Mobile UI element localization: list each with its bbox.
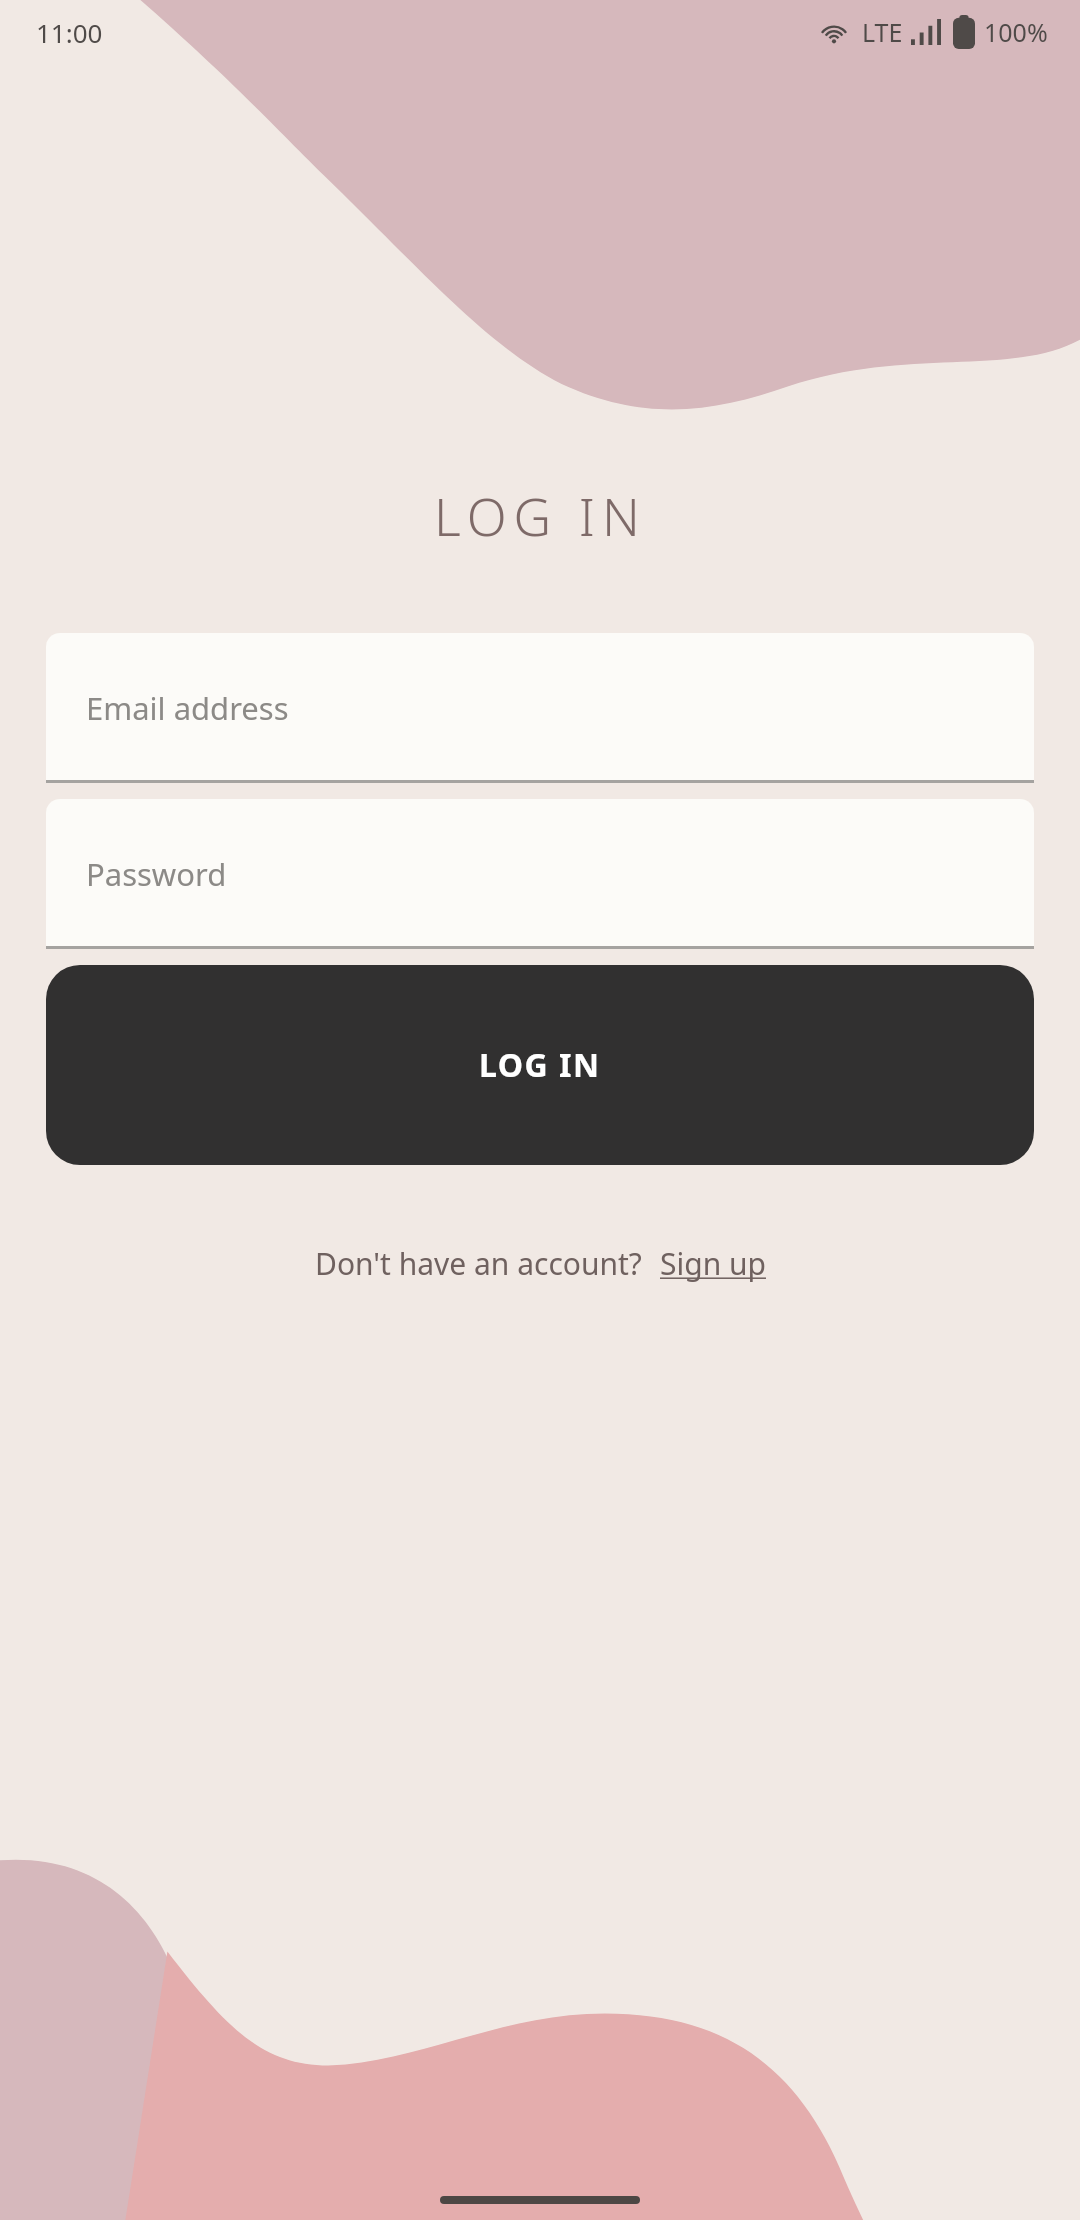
other: Cellular signal (911, 19, 941, 45)
button[interactable]: Email address (46, 633, 1034, 783)
staticText: Password (86, 853, 227, 895)
staticText: LOG IN (479, 1043, 601, 1087)
staticText: 100% (984, 15, 1048, 49)
staticText: LTE (862, 15, 903, 49)
other: Battery full (953, 15, 975, 49)
staticText: Don't have an account? (315, 1243, 642, 1284)
other: Wi-Fi (818, 19, 850, 45)
staticText: LOG IN (434, 480, 647, 551)
staticText: Email address (86, 687, 289, 729)
button[interactable]: Sign up (660, 1243, 766, 1284)
button[interactable]: LOG IN (46, 965, 1034, 1165)
staticText: 11:00 (36, 15, 103, 50)
staticText: Sign up (660, 1243, 766, 1284)
button[interactable]: Password (46, 799, 1034, 949)
